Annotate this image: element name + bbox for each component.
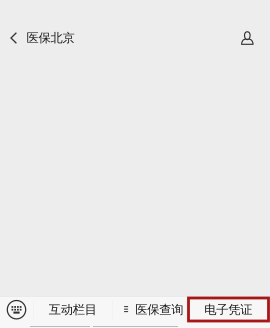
button[interactable]: 电子凭证 — [187, 297, 270, 323]
staticText: 互动栏目 — [49, 302, 97, 317]
button[interactable]: 互动栏目 — [34, 297, 112, 323]
staticText: 电子凭证 — [204, 302, 252, 317]
staticText: 医保北京 — [26, 30, 74, 46]
button[interactable]: 返回 — [0, 18, 26, 58]
button[interactable]: 公众号资料 — [230, 18, 270, 58]
button[interactable]: 医保查询 — [113, 297, 186, 323]
staticText: 医保查询 — [135, 302, 183, 317]
button[interactable]: 切换到键盘 — [0, 297, 33, 323]
